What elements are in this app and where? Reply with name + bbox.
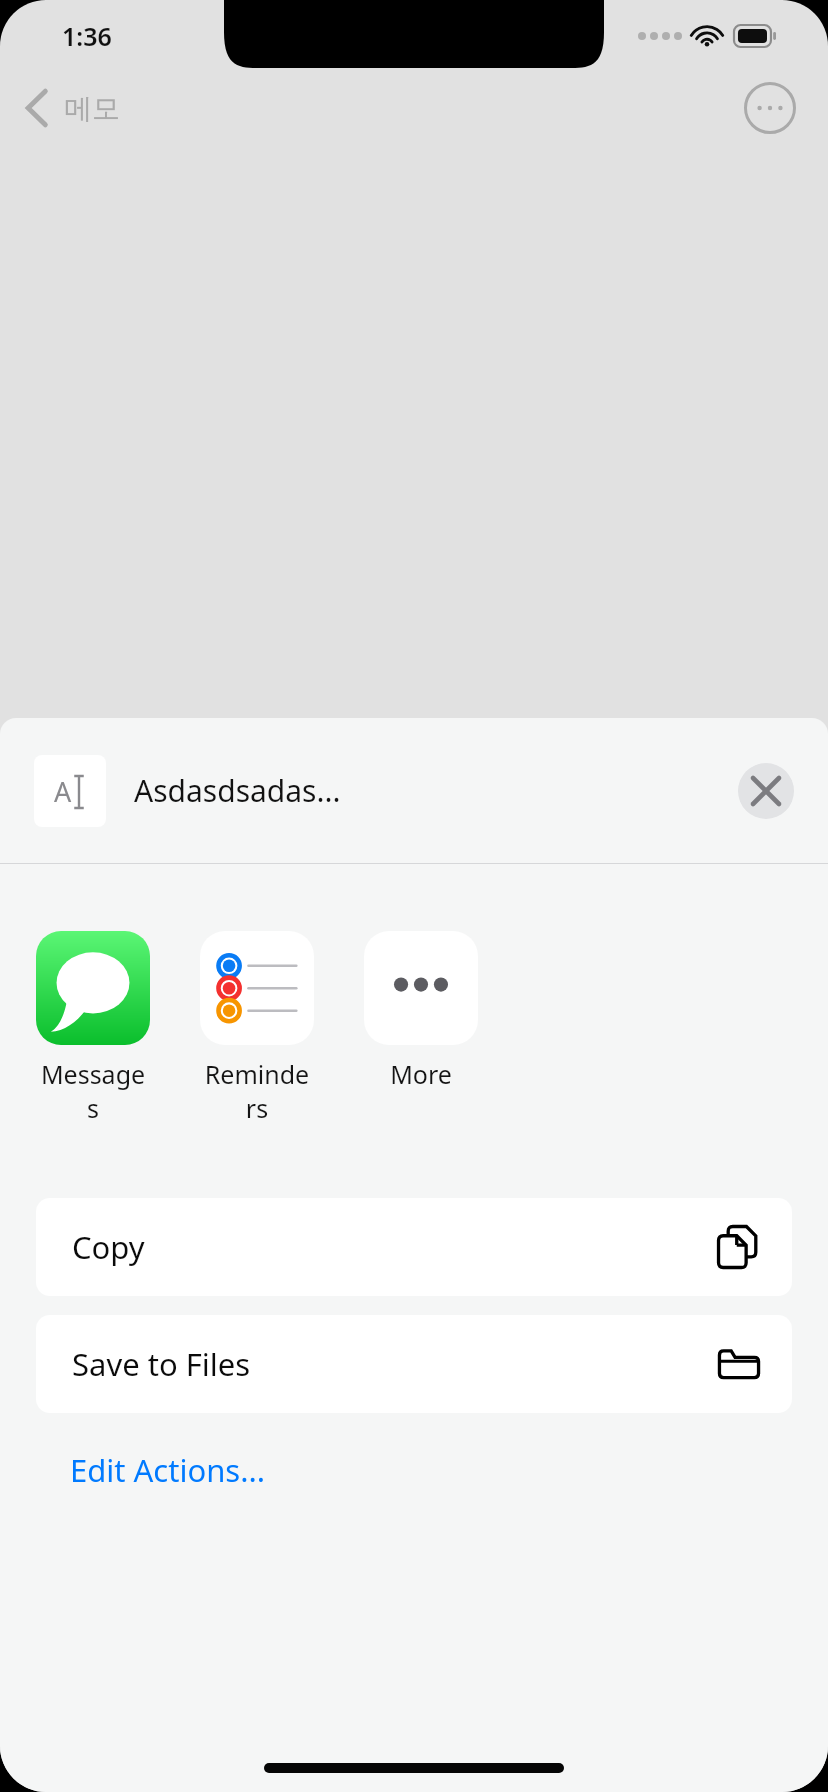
staticText: Copy — [72, 1226, 716, 1268]
button[interactable]: Reminders — [200, 931, 314, 1125]
staticText: Reminders — [200, 1057, 314, 1125]
button[interactable]: More — [364, 931, 478, 1091]
button[interactable]: Edit Actions... — [0, 1439, 296, 1501]
staticText: Asdasdsadas... — [134, 770, 738, 811]
button[interactable]: Copy — [36, 1198, 792, 1296]
staticText: Save to Files — [72, 1343, 716, 1385]
staticText: Messages — [36, 1057, 150, 1125]
button[interactable]: More options — [744, 82, 796, 134]
staticText: A — [54, 773, 72, 810]
button[interactable]: 메모 — [0, 79, 134, 137]
staticText: 메모 — [64, 91, 120, 126]
staticText: More — [390, 1057, 452, 1091]
button[interactable]: Messages — [36, 931, 150, 1125]
staticText: Edit Actions... — [70, 1449, 266, 1491]
button[interactable]: Close — [738, 763, 794, 819]
button[interactable]: Save to Files — [36, 1315, 792, 1413]
staticText: 1:36 — [62, 19, 112, 53]
